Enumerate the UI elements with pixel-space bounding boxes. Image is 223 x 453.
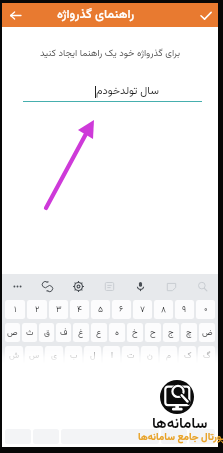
button[interactable]: ن (141, 346, 158, 365)
staticText: ض (202, 326, 213, 339)
button[interactable]: ش (5, 346, 23, 365)
button[interactable]: ۱ (5, 300, 25, 319)
button[interactable]: س (25, 346, 43, 365)
button[interactable]: ب (65, 346, 82, 365)
button[interactable]: گ (198, 346, 215, 365)
button[interactable]: ۷ (133, 300, 152, 319)
button[interactable]: ه (109, 323, 125, 342)
staticText: ۲ (35, 303, 40, 316)
staticText: ص (7, 326, 18, 339)
button[interactable]: Search (187, 274, 218, 298)
staticText: پورتال جامع سامانه‌ها (138, 430, 223, 446)
staticText: ۷ (140, 303, 146, 316)
button[interactable]: ح (145, 323, 161, 342)
staticText: ف (60, 326, 68, 339)
button[interactable]: Stickers (156, 274, 187, 298)
button[interactable]: ۲ (27, 300, 47, 319)
staticText: ۶ (119, 303, 124, 316)
staticText: ۵ (98, 303, 104, 316)
button[interactable]: ق (39, 323, 54, 342)
button[interactable]: ۸ (154, 300, 173, 319)
staticText: ق (44, 326, 50, 339)
staticText: ۹ (182, 303, 187, 316)
button[interactable]: ث (22, 323, 37, 342)
button[interactable]: Translate (32, 274, 63, 298)
staticText: غ (78, 326, 84, 339)
button[interactable]: غ (73, 323, 89, 342)
staticText: ۱ (14, 303, 17, 316)
staticText: ن (147, 349, 153, 362)
staticText: ب (70, 349, 78, 362)
staticText: گ (203, 349, 211, 362)
button[interactable]: ک (179, 346, 196, 365)
button[interactable]: ۳ (49, 300, 68, 319)
staticText: ه (115, 326, 119, 339)
staticText: ۳ (56, 303, 62, 316)
button[interactable]: Clipboard (94, 274, 125, 298)
button[interactable]: ا (103, 346, 120, 365)
staticText: ۸ (161, 303, 167, 316)
button[interactable]: و (169, 369, 191, 388)
button[interactable]: خ (127, 323, 143, 342)
staticText: سامانه‌ها (152, 413, 208, 436)
button[interactable]: ۵ (91, 300, 110, 319)
button[interactable]: راهنمای گذرواژه (57, 5, 135, 25)
staticText: ۰ (204, 303, 208, 316)
staticText: ع (96, 326, 102, 339)
staticText: چ (186, 326, 192, 339)
button[interactable]: Back (7, 7, 24, 24)
staticText: م (166, 349, 172, 362)
staticText: ج (168, 326, 174, 339)
staticText: و (178, 372, 182, 385)
button[interactable]: ۶ (112, 300, 131, 319)
staticText: ش (9, 349, 20, 362)
button[interactable]: ل (84, 346, 101, 365)
staticText: ل (90, 349, 96, 362)
button[interactable]: ۴ (70, 300, 89, 319)
button[interactable]: ض (199, 323, 215, 342)
staticText: س (29, 349, 40, 362)
staticText: ی (51, 349, 57, 362)
button[interactable]: ع (91, 323, 107, 342)
staticText: برای گذرواژه خود یک راهنما ایجاد کنید (2, 46, 218, 61)
button[interactable]: پ (145, 369, 167, 388)
button[interactable]: چ (181, 323, 197, 342)
button[interactable]: ف (56, 323, 71, 342)
button[interactable]: ی (45, 346, 63, 365)
button[interactable]: ت (122, 346, 139, 365)
staticText: ث (26, 326, 34, 339)
button[interactable]: More options (2, 274, 32, 298)
button[interactable]: Done (197, 7, 214, 24)
button[interactable]: ۹ (175, 300, 194, 319)
button[interactable]: Voice input (125, 274, 156, 298)
button[interactable]: سال تولدخودم (96, 83, 159, 100)
staticText: ت (127, 349, 135, 362)
staticText: ح (150, 326, 156, 339)
button[interactable]: Settings (63, 274, 94, 298)
staticText: خ (132, 326, 138, 339)
button[interactable]: ۰ (196, 300, 215, 319)
button[interactable]: ص (5, 323, 20, 342)
button[interactable]: م (160, 346, 177, 365)
staticText: ا (111, 349, 113, 362)
staticText: ۴ (77, 303, 82, 316)
button[interactable]: ج (163, 323, 179, 342)
staticText: ک (184, 349, 192, 362)
